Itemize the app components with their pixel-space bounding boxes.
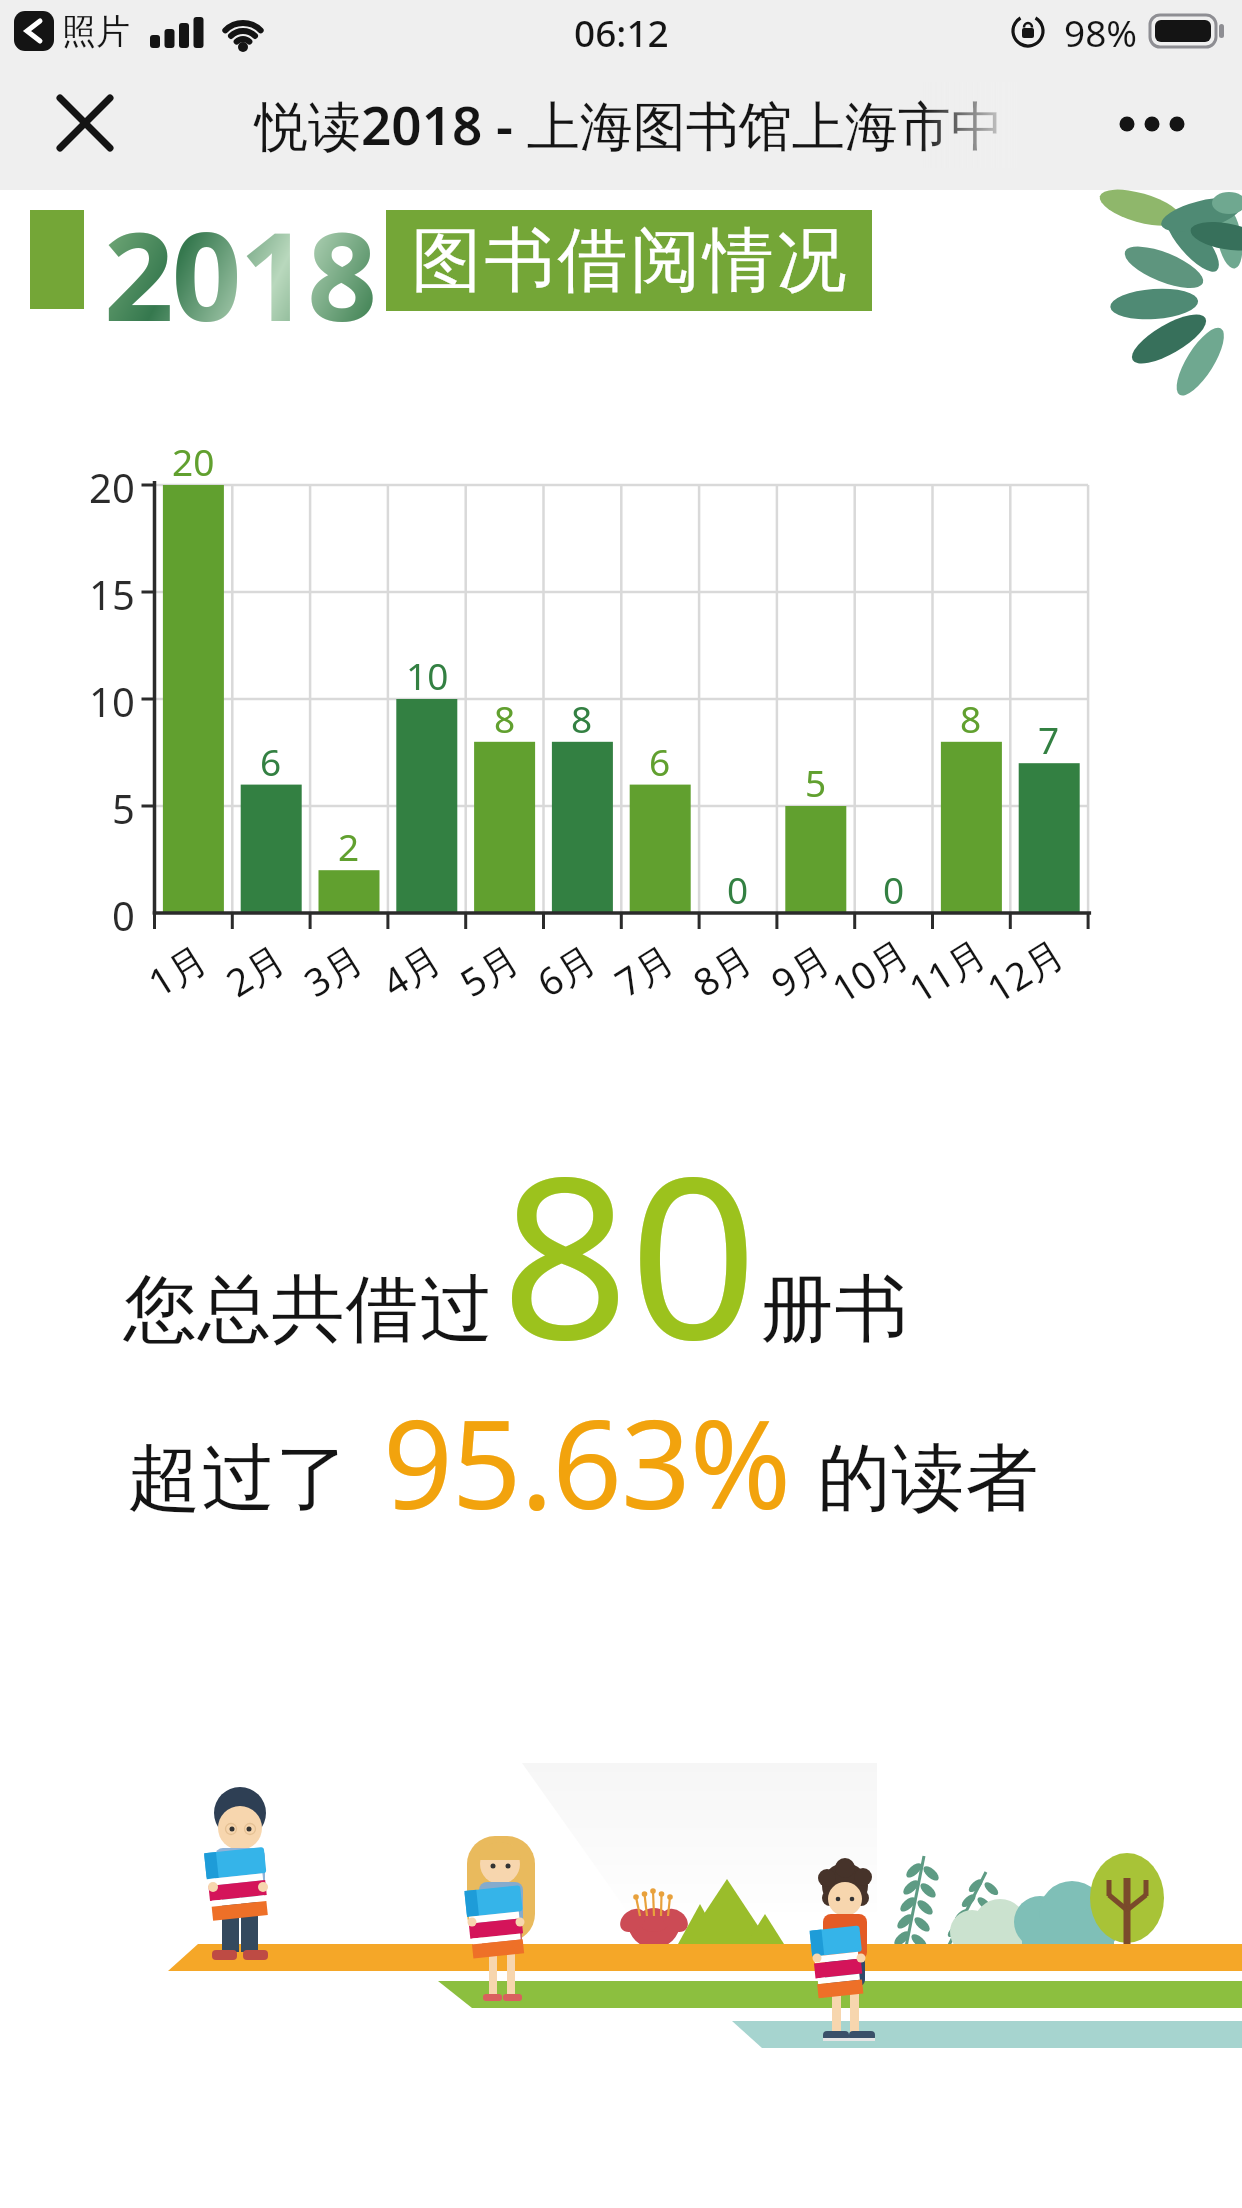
staticText: 2018 (104, 191, 376, 331)
staticText: 8 (571, 693, 593, 739)
staticText: 11月 (898, 926, 996, 1014)
staticText: 图书借阅情况 (410, 217, 848, 305)
staticText: 超过了 (127, 1433, 349, 1525)
staticText: 的读者 (817, 1433, 1039, 1525)
staticText: 12月 (976, 926, 1074, 1014)
staticText: 10 (89, 674, 135, 724)
button[interactable] (40, 80, 130, 170)
staticText: 7月 (605, 932, 683, 1008)
staticText: 5 (112, 781, 135, 831)
staticText: 10月 (821, 926, 919, 1014)
button[interactable] (1100, 85, 1210, 165)
staticText: 20 (172, 436, 215, 482)
button[interactable]: 图书借阅情况 (386, 210, 872, 311)
staticText: 8月 (683, 932, 761, 1008)
staticText: 0 (112, 888, 135, 938)
staticText: 5月 (450, 932, 528, 1008)
staticText: 6月 (527, 932, 605, 1008)
staticText: 95.63% (383, 1379, 791, 1545)
staticText: 10 (406, 650, 449, 696)
staticText: 1月 (138, 932, 216, 1008)
staticText: 册书 (760, 1264, 908, 1356)
staticText: 5 (805, 757, 827, 803)
staticText: 0 (883, 864, 905, 910)
staticText: 98% (1064, 7, 1138, 57)
staticText: 8 (494, 693, 516, 739)
staticText: 2月 (216, 932, 294, 1008)
staticText: 80 (501, 1100, 758, 1405)
staticText: 3月 (294, 932, 372, 1008)
staticText: 06:12 (574, 7, 669, 57)
staticText: 8 (960, 693, 982, 739)
staticText: 悦读2018 - 上海图书馆上海市中 (255, 88, 1004, 160)
staticText: 4月 (372, 932, 450, 1008)
staticText: 7 (1038, 714, 1060, 760)
staticText: 照片 (62, 10, 130, 53)
staticText: 6 (649, 736, 671, 782)
staticText: 2 (338, 821, 360, 867)
staticText: 20 (89, 460, 135, 510)
staticText: 9月 (761, 932, 839, 1008)
staticText: 15 (89, 567, 135, 617)
staticText: 您总共借过 (123, 1264, 493, 1356)
staticText: 6 (260, 736, 282, 782)
staticText: 0 (727, 864, 749, 910)
